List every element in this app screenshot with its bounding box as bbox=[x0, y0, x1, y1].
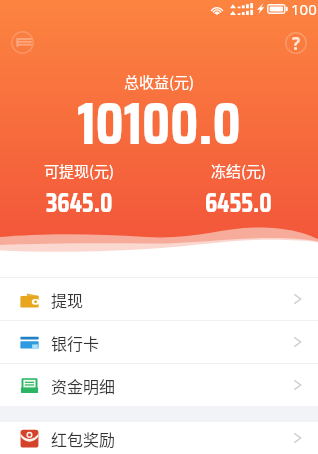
staticText: 资金明细 bbox=[51, 374, 116, 397]
staticText: 100 bbox=[291, 0, 317, 17]
staticText: ? bbox=[292, 32, 301, 54]
button[interactable]: 红包奖励 bbox=[0, 422, 318, 454]
staticText: 10100.0 bbox=[0, 77, 318, 170]
button[interactable]: 资金明细 bbox=[0, 364, 318, 406]
staticText: 冻结(元) bbox=[211, 160, 267, 182]
button[interactable]: 账单记录 bbox=[5, 25, 40, 60]
button[interactable]: 银行卡 bbox=[0, 321, 318, 363]
button[interactable]: 帮助 bbox=[278, 25, 313, 60]
staticText: 红包奖励 bbox=[51, 427, 116, 450]
staticText: 6455.0 bbox=[205, 182, 272, 223]
staticText: 总收益(元) bbox=[0, 71, 318, 93]
staticText: 3645.0 bbox=[46, 182, 113, 223]
staticText: 可提现(元) bbox=[44, 160, 115, 182]
staticText: 提现 bbox=[51, 288, 84, 311]
staticText: 银行卡 bbox=[51, 331, 100, 354]
button[interactable]: 提现 bbox=[0, 278, 318, 320]
